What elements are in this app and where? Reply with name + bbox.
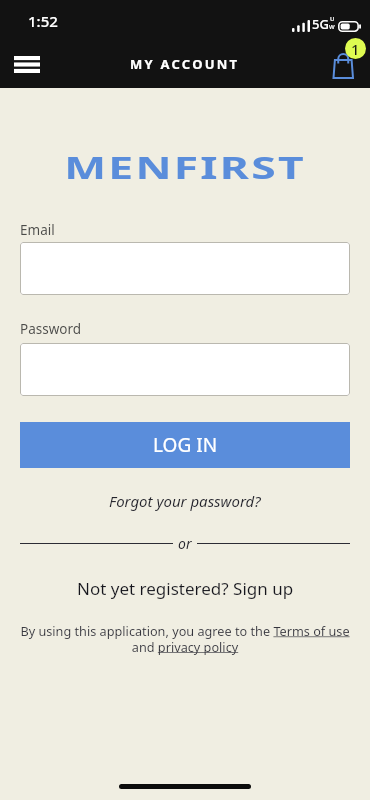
staticText: 5G bbox=[312, 15, 329, 33]
button[interactable]: Shopping bag, 1 item bbox=[322, 42, 366, 86]
staticText: or bbox=[178, 534, 192, 553]
staticText: Not yet registered? Sign up bbox=[77, 577, 294, 600]
staticText: 1:52 bbox=[28, 11, 58, 31]
staticText: Forgot your password? bbox=[109, 491, 261, 511]
staticText: MENFIRST bbox=[0, 147, 370, 185]
button[interactable]: Not yet registered? Sign up bbox=[0, 575, 370, 601]
button[interactable]: Forgot your password? bbox=[0, 488, 370, 514]
staticText: Password bbox=[20, 320, 82, 338]
button[interactable]: Open navigation menu bbox=[6, 43, 48, 85]
staticText: MY ACCOUNT bbox=[130, 55, 240, 73]
button[interactable]: LOG IN bbox=[20, 422, 350, 468]
button[interactable] bbox=[20, 242, 350, 295]
button[interactable] bbox=[20, 343, 350, 396]
staticText: W bbox=[329, 23, 335, 31]
staticText: Email bbox=[20, 221, 55, 239]
staticText: U bbox=[330, 15, 335, 23]
staticText: 1 bbox=[351, 39, 360, 59]
staticText: LOG IN bbox=[153, 432, 218, 458]
button[interactable]: By using this application, you agree to … bbox=[6, 622, 364, 655]
